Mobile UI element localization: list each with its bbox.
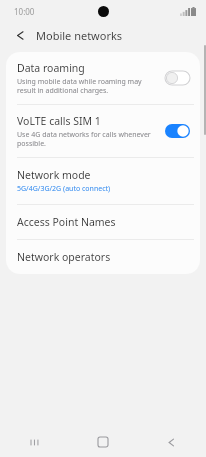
button[interactable]: Home <box>68 427 137 457</box>
button[interactable]: Network mode <box>6 158 200 204</box>
staticText: Using mobile data while roaming may resu… <box>17 77 157 95</box>
staticText: Data roaming <box>17 61 85 75</box>
staticText: Access Point Names <box>17 215 116 229</box>
button[interactable]: Access Point Names <box>6 205 200 239</box>
staticText: Mobile networks <box>36 28 123 43</box>
button[interactable]: Network operators <box>6 240 200 274</box>
staticText: Network mode <box>17 168 91 182</box>
button[interactable]: VoLTE calls SIM 1 <box>6 105 200 157</box>
staticText: 10:00 <box>14 6 35 17</box>
button[interactable]: Recents <box>0 427 68 457</box>
button[interactable]: Back <box>10 25 30 45</box>
button[interactable]: Back <box>137 427 206 457</box>
staticText: Use 4G data networks for calls whenever … <box>17 130 157 148</box>
staticText: VoLTE calls SIM 1 <box>17 114 101 128</box>
staticText: 5G/4G/3G/2G (auto connect) <box>17 184 111 194</box>
button[interactable]: Data roaming <box>6 52 200 104</box>
staticText: Network operators <box>17 250 111 264</box>
button[interactable]: Toggle off <box>165 71 190 85</box>
button[interactable]: Toggle on <box>165 124 190 138</box>
